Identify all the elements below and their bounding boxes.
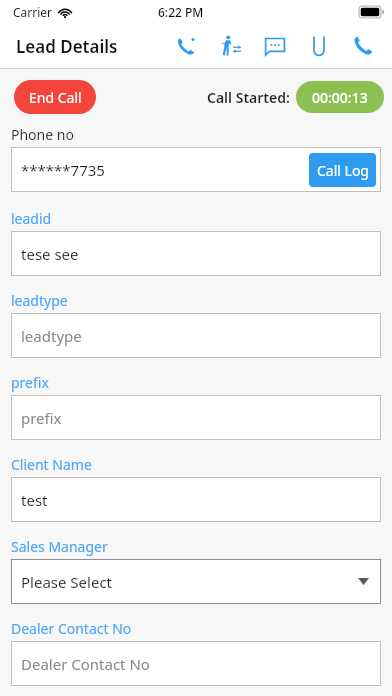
staticText: Call Started:	[207, 88, 290, 107]
staticText: Dealer Contact No	[11, 619, 132, 638]
staticText: tese see	[21, 244, 79, 264]
staticText: Please Select	[21, 572, 113, 592]
button[interactable]: Please Select	[11, 559, 381, 604]
button[interactable]: Call	[348, 31, 378, 61]
button[interactable]: Attachments	[304, 31, 334, 61]
staticText: End Call	[29, 88, 82, 107]
button[interactable]: Transfer lead	[216, 31, 246, 61]
staticText: Call Log	[317, 161, 369, 180]
staticText: Sales Manager	[11, 537, 108, 556]
staticText: Phone no	[11, 125, 74, 144]
button[interactable]: Messages	[260, 31, 290, 61]
button[interactable]: leadtype	[11, 313, 381, 358]
button[interactable]: Dealer Contact No	[11, 641, 381, 686]
button[interactable]: test	[11, 477, 381, 522]
staticText: leadtype	[21, 326, 82, 346]
staticText: Client Name	[11, 455, 92, 474]
staticText: Lead Details	[16, 35, 118, 58]
button[interactable]: End Call	[14, 80, 96, 114]
button[interactable]: Call Log	[309, 153, 376, 187]
staticText: 00:00:13	[312, 88, 368, 107]
button[interactable]: Add call	[172, 31, 202, 61]
staticText: prefix	[11, 373, 49, 392]
staticText: test	[21, 490, 48, 510]
staticText: 6:22 PM	[158, 4, 204, 20]
staticText: Dealer Contact No	[21, 654, 150, 674]
staticText: leadid	[11, 209, 52, 228]
staticText: Carrier	[13, 4, 53, 20]
staticText: ******7735	[21, 160, 105, 180]
staticText: leadtype	[11, 291, 68, 310]
button[interactable]: tese see	[11, 231, 381, 276]
button[interactable]: prefix	[11, 395, 381, 440]
staticText: prefix	[21, 408, 62, 428]
